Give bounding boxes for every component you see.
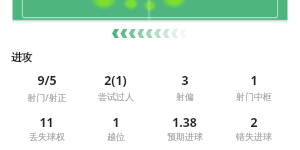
- staticText: 1.38: [172, 114, 197, 131]
- staticText: 射门/射正: [27, 91, 67, 103]
- staticText: 9/5: [37, 72, 57, 89]
- button[interactable]: 1.38: [150, 114, 219, 142]
- button[interactable]: 2(1): [81, 72, 150, 102]
- staticText: 射偏: [176, 91, 194, 102]
- staticText: 错失进球: [236, 131, 272, 142]
- button[interactable]: 2: [219, 114, 288, 142]
- button[interactable]: 1: [219, 72, 288, 102]
- staticText: 进攻: [11, 51, 32, 64]
- button[interactable]: 1: [81, 114, 150, 142]
- staticText: 预期进球: [167, 131, 203, 142]
- button[interactable]: 9/5: [12, 72, 81, 103]
- staticText: 尝试过人: [98, 91, 134, 102]
- button[interactable]: 3: [150, 72, 219, 102]
- staticText: 1: [112, 114, 120, 131]
- staticText: 1: [250, 72, 258, 89]
- staticText: 2: [250, 114, 258, 131]
- staticText: 2(1): [104, 72, 127, 89]
- staticText: 3: [181, 72, 189, 89]
- staticText: 11: [39, 114, 54, 131]
- staticText: 射门中框: [236, 91, 272, 102]
- staticText: 丢失球权: [29, 131, 65, 142]
- button[interactable]: 11: [12, 114, 81, 142]
- staticText: 越位: [107, 131, 125, 142]
